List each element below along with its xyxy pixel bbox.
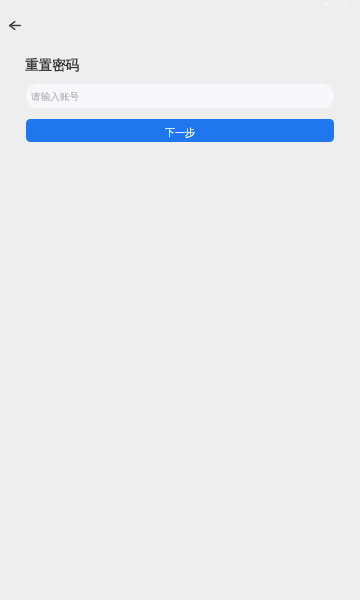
button[interactable]: 请输入账号 (26, 84, 334, 108)
button[interactable]: Back (2, 13, 27, 38)
staticText: 下一步 (165, 126, 195, 139)
button[interactable]: 下一步 (26, 119, 334, 142)
staticText: 重置密码 (25, 57, 79, 74)
staticText: 请输入账号 (31, 91, 79, 103)
